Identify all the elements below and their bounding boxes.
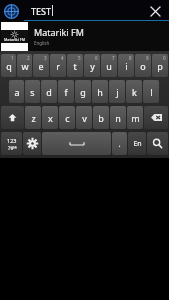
staticText: b <box>98 112 104 124</box>
button[interactable]: l <box>143 80 159 103</box>
button[interactable]: g <box>75 80 91 103</box>
button[interactable]: p <box>152 54 168 77</box>
button[interactable]: q <box>1 54 16 77</box>
other: Space <box>42 132 111 155</box>
staticText: Matariki FM <box>34 26 84 38</box>
staticText: TEST <box>31 5 52 17</box>
staticText: c <box>65 112 70 124</box>
button[interactable]: Matariki FM <box>0 21 169 51</box>
button[interactable]: f <box>58 80 74 103</box>
button[interactable] <box>1 106 24 129</box>
staticText: 123 <box>7 137 17 144</box>
button[interactable]: s <box>25 80 40 103</box>
button[interactable]: 123 <box>1 132 22 155</box>
button[interactable]: n <box>110 106 126 129</box>
staticText: 8 <box>129 55 132 61</box>
button[interactable]: a <box>9 80 24 103</box>
staticText: 0 <box>163 55 166 61</box>
staticText: 1 <box>11 55 14 61</box>
button[interactable]: App icon <box>3 3 19 19</box>
button[interactable]: b <box>93 106 109 129</box>
staticText: 7 <box>112 55 115 61</box>
button[interactable]: En <box>128 132 146 155</box>
button[interactable]: y <box>84 54 100 77</box>
staticText: 4 <box>61 55 64 61</box>
staticText: m <box>131 112 140 124</box>
staticText: English <box>34 40 50 46</box>
other: Backspace <box>144 106 168 129</box>
staticText: h <box>97 86 103 98</box>
button[interactable]: i <box>118 54 134 77</box>
button[interactable]: v <box>76 106 92 129</box>
staticText: v <box>82 112 87 124</box>
button[interactable]: j <box>109 80 125 103</box>
button[interactable]: o <box>135 54 151 77</box>
staticText: q <box>6 60 12 72</box>
staticText: g <box>80 86 86 98</box>
button[interactable]: t <box>67 54 83 77</box>
other: Search <box>147 132 168 155</box>
staticText: z <box>31 112 36 124</box>
button[interactable]: k <box>126 80 142 103</box>
staticText: j <box>116 86 119 98</box>
staticText: 5 <box>78 55 81 61</box>
staticText: s <box>30 86 35 98</box>
staticText: ?#* <box>8 144 17 151</box>
staticText: o <box>140 60 146 72</box>
button[interactable]: h <box>92 80 108 103</box>
staticText: e <box>38 60 44 72</box>
staticText: t <box>73 60 77 72</box>
button[interactable]: z <box>25 106 41 129</box>
button[interactable] <box>147 132 168 155</box>
staticText: d <box>46 86 52 98</box>
button[interactable]: Clear search <box>147 3 163 19</box>
button[interactable]: m <box>127 106 143 129</box>
staticText: 3 <box>44 55 47 61</box>
button[interactable]: . <box>112 132 127 155</box>
button[interactable]: d <box>41 80 57 103</box>
staticText: . <box>118 138 121 149</box>
staticText: 2 <box>27 55 30 61</box>
staticText: Matariki FM <box>4 37 25 42</box>
button[interactable]: e <box>33 54 49 77</box>
button[interactable] <box>144 106 168 129</box>
button[interactable]: c <box>59 106 75 129</box>
button[interactable] <box>23 132 41 155</box>
staticText: y <box>90 60 95 72</box>
staticText: k <box>132 86 137 98</box>
other: Keyboard settings <box>23 132 41 155</box>
button[interactable] <box>42 132 111 155</box>
staticText: r <box>56 60 60 72</box>
button[interactable]: r <box>50 54 66 77</box>
staticText: i <box>125 60 128 72</box>
staticText: a <box>14 86 20 98</box>
staticText: p <box>157 60 163 72</box>
staticText: l <box>150 86 153 98</box>
staticText: 6 <box>95 55 98 61</box>
staticText: x <box>48 112 53 124</box>
staticText: En <box>133 139 142 149</box>
staticText: u <box>106 60 112 72</box>
button[interactable]: u <box>101 54 117 77</box>
button[interactable]: w <box>17 54 32 77</box>
staticText: f <box>64 86 68 98</box>
staticText: w <box>21 60 29 72</box>
staticText: n <box>115 112 121 124</box>
staticText: 9 <box>146 55 149 61</box>
button[interactable]: x <box>42 106 58 129</box>
